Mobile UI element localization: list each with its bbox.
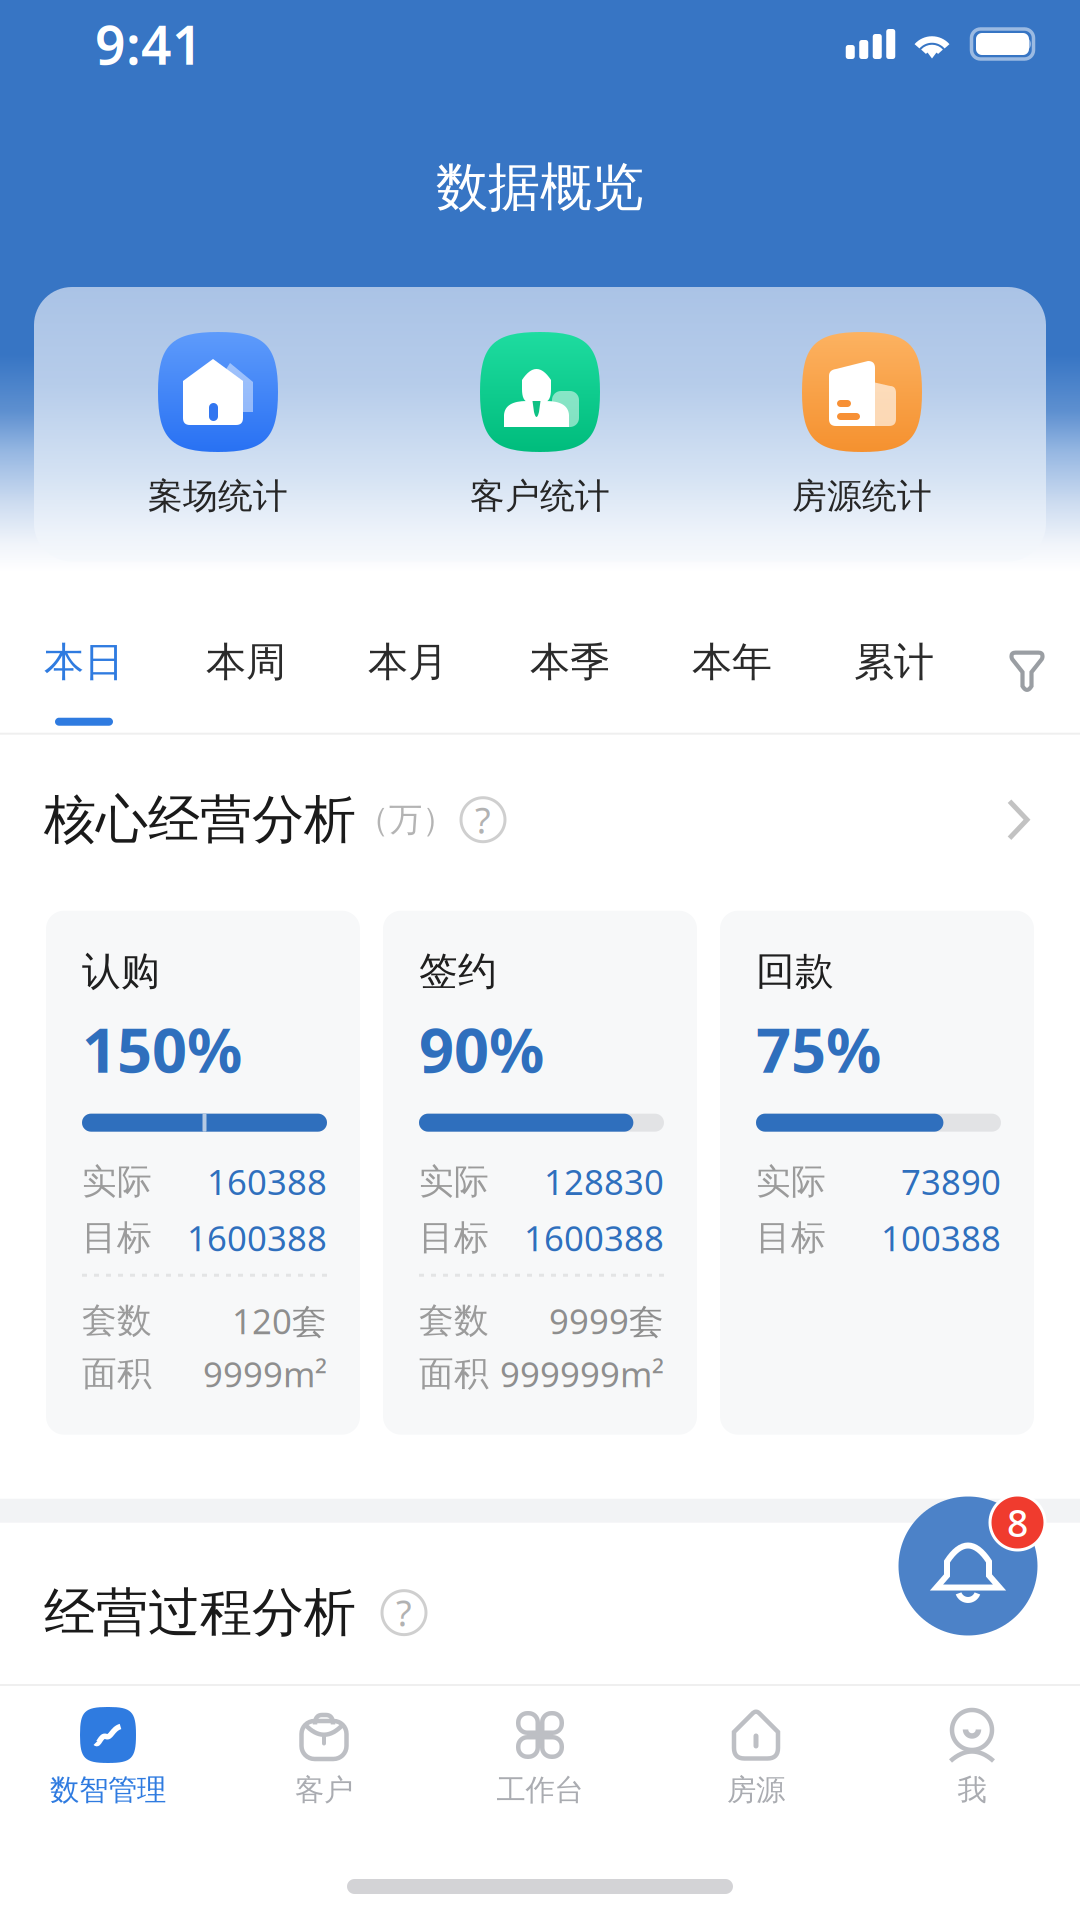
staticText: 面积 (419, 1352, 489, 1395)
staticText: 9:41 (95, 9, 203, 79)
staticText: 999999m² (500, 1351, 664, 1397)
staticText: 认购 (82, 948, 160, 995)
staticText: 套数 (419, 1299, 489, 1342)
button[interactable]: 通知 (892, 1490, 1044, 1642)
button[interactable]: 房源 (648, 1686, 864, 1808)
staticText: 1600388 (187, 1215, 327, 1261)
staticText: 实际 (82, 1160, 152, 1203)
staticText: 回款 (756, 948, 834, 995)
staticText: 1600388 (524, 1215, 664, 1261)
staticText: 本日 (44, 638, 124, 687)
staticText: 套数 (82, 1299, 152, 1342)
button[interactable]: 筛选 (975, 613, 1079, 732)
staticText: 75% (756, 1008, 881, 1090)
button[interactable]: 累计 (813, 612, 975, 733)
staticText: 目标 (82, 1216, 152, 1259)
button[interactable]: 查看详情 (995, 787, 1042, 853)
staticText: 100388 (881, 1215, 1001, 1261)
staticText: 目标 (419, 1216, 489, 1259)
button[interactable]: 本月 (327, 612, 489, 733)
staticText: 73890 (901, 1159, 1001, 1205)
staticText: 客户 (295, 1772, 353, 1808)
staticText: 累计 (854, 638, 934, 687)
staticText: 128830 (544, 1159, 664, 1205)
staticText: 实际 (756, 1160, 826, 1203)
button[interactable]: 本日 (3, 612, 165, 733)
button[interactable]: 签约 (383, 911, 697, 1435)
staticText: 案场统计 (148, 475, 288, 518)
button[interactable]: 认购 (46, 911, 360, 1435)
button[interactable]: 客户 (216, 1686, 432, 1808)
staticText: 数据概览 (436, 156, 644, 219)
staticText: ? (475, 796, 491, 844)
staticText: 客户统计 (470, 475, 610, 518)
staticText: 本周 (206, 638, 286, 687)
button[interactable]: 回款 (720, 911, 1034, 1435)
staticText: 房源 (727, 1772, 785, 1808)
staticText: 房源统计 (792, 475, 932, 518)
staticText: 本月 (368, 638, 448, 687)
staticText: 面积 (82, 1352, 152, 1395)
staticText: 我 (957, 1772, 986, 1808)
staticText: 实际 (419, 1160, 489, 1203)
staticText: 本年 (692, 638, 772, 687)
button[interactable]: 案场统计 (57, 332, 379, 518)
button[interactable]: 房源统计 (701, 332, 1023, 518)
button[interactable]: 本年 (651, 612, 813, 733)
staticText: 数智管理 (50, 1772, 166, 1808)
staticText: 150% (82, 1008, 242, 1090)
staticText: 签约 (419, 948, 497, 995)
staticText: 目标 (756, 1216, 826, 1259)
staticText: 9999套 (549, 1298, 664, 1344)
staticText: 9999m² (203, 1351, 327, 1397)
button[interactable]: 工作台 (432, 1686, 648, 1808)
staticText: 160388 (207, 1159, 327, 1205)
button[interactable]: 客户统计 (379, 332, 701, 518)
staticText: 工作台 (496, 1772, 583, 1808)
staticText: 90% (419, 1008, 544, 1090)
staticText: 核心经营分析 (44, 788, 356, 852)
staticText: 120套 (232, 1298, 327, 1344)
staticText: 8 (1007, 1498, 1028, 1547)
button[interactable]: 本周 (165, 612, 327, 733)
staticText: 本季 (530, 638, 610, 687)
staticText: （万） (356, 799, 455, 840)
button[interactable]: 我 (864, 1686, 1080, 1808)
button[interactable]: 本季 (489, 612, 651, 733)
staticText: 经营过程分析 (44, 1581, 356, 1645)
staticText: ? (396, 1589, 412, 1636)
button[interactable]: 数智管理 (0, 1686, 216, 1808)
